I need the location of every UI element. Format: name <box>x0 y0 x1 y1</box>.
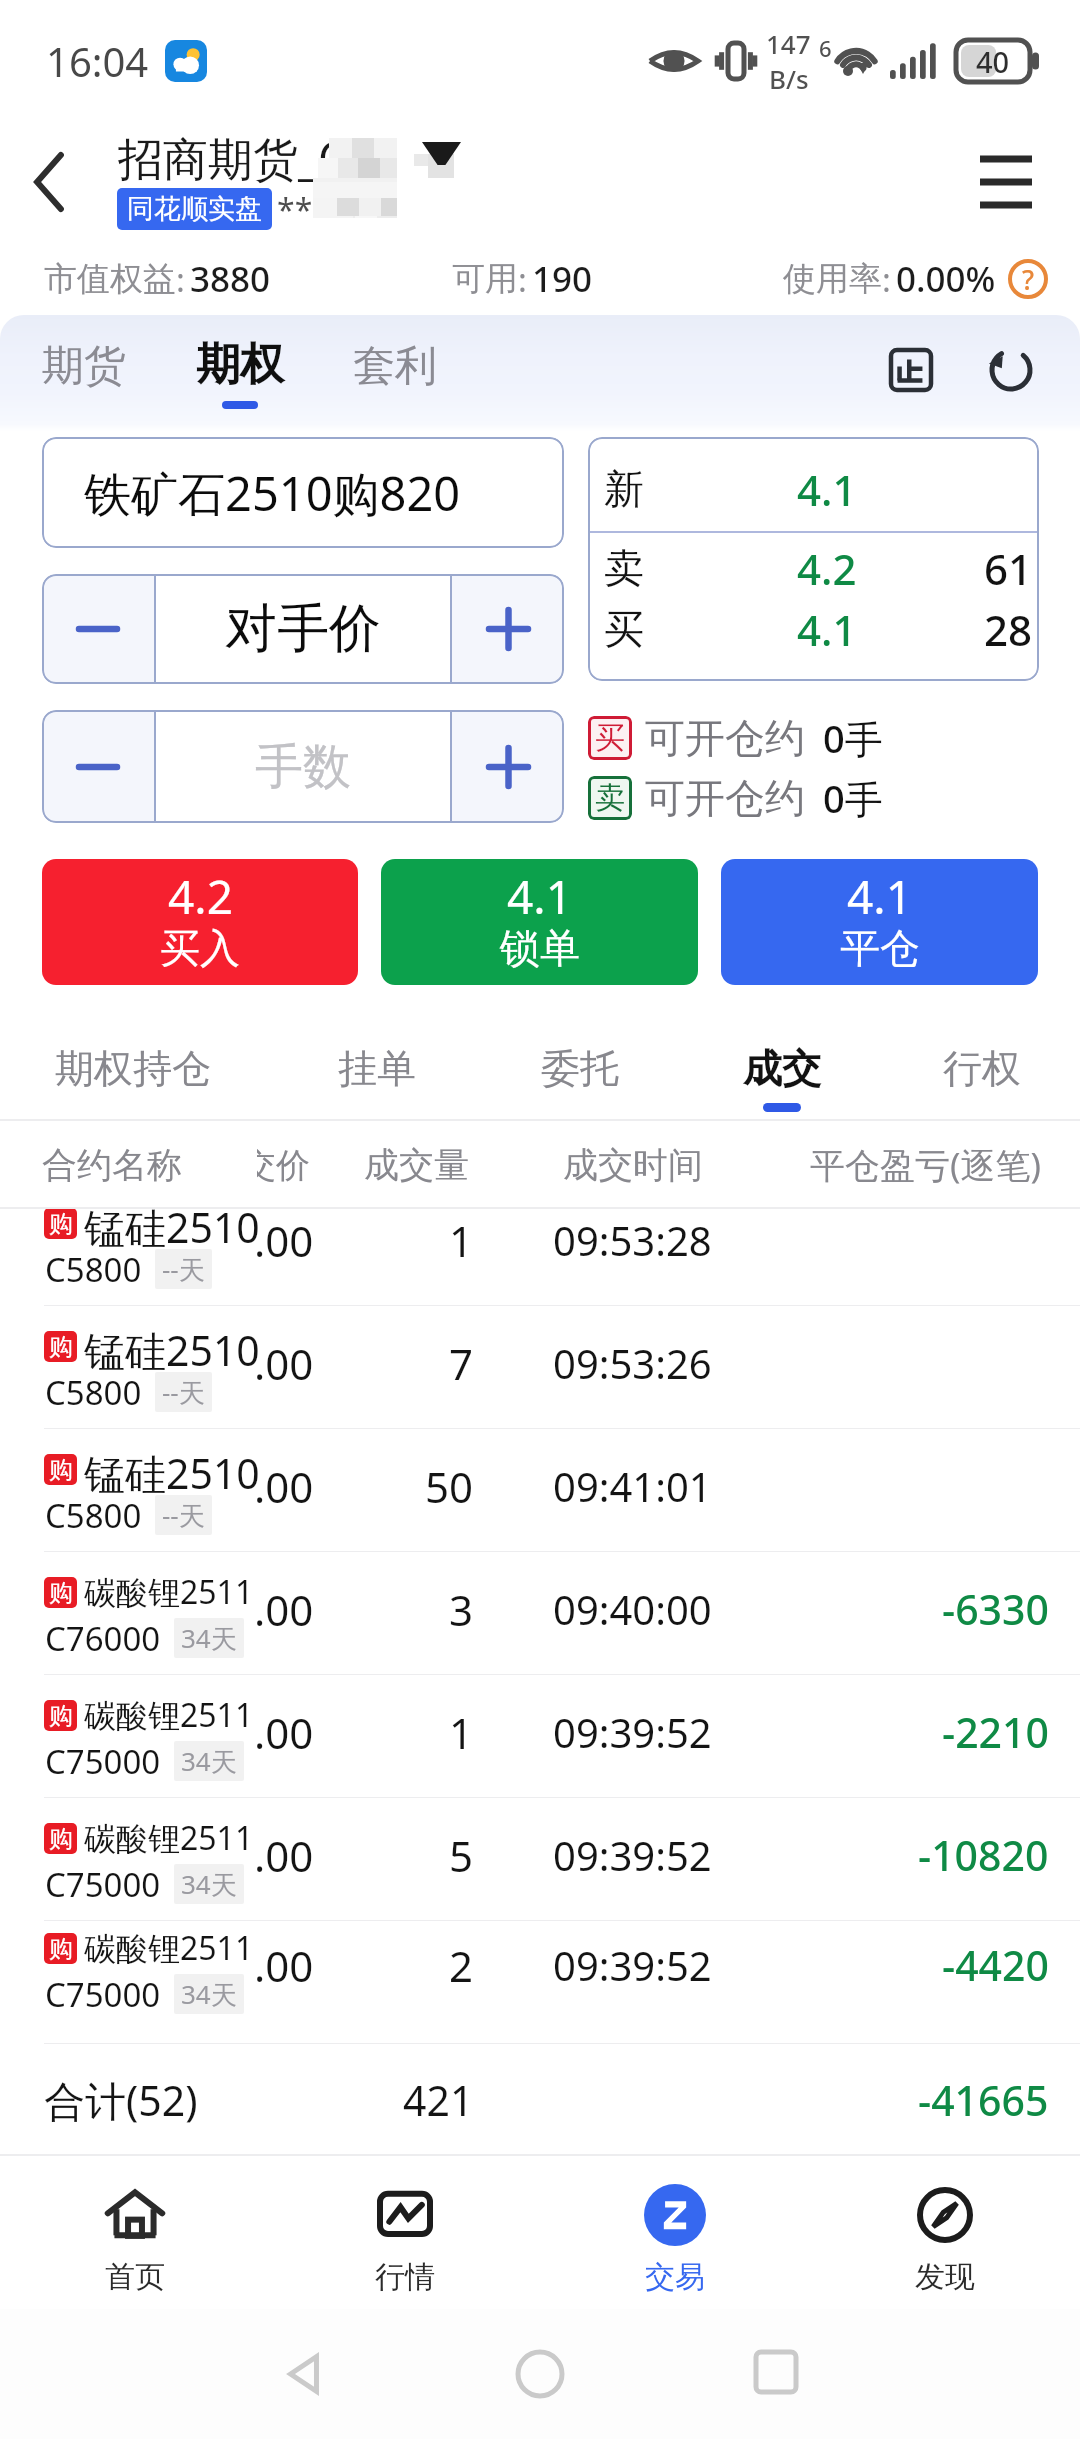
button[interactable]: .00 <box>0 1306 1080 1428</box>
staticText: 09:53:26 <box>553 1336 712 1390</box>
button[interactable]: 铁矿石2510购820 <box>42 437 564 548</box>
staticText: .00 <box>254 1581 314 1638</box>
staticText: .00 <box>254 1937 314 1994</box>
button[interactable]: Refresh <box>978 337 1044 403</box>
staticText: 2 <box>449 1937 474 1994</box>
button[interactable]: .00 <box>0 1552 1080 1674</box>
staticText: 交易 <box>645 2258 705 2296</box>
staticText: 购 <box>49 1455 73 1485</box>
staticText: 可开仓约 <box>645 713 805 763</box>
staticText: 0手 <box>823 712 883 764</box>
button[interactable]: 期权 <box>196 337 284 409</box>
button[interactable]: Help <box>1008 259 1048 299</box>
button[interactable]: 行情 <box>270 2156 540 2309</box>
button[interactable]: 行权 <box>892 1019 1072 1121</box>
staticText: : <box>518 257 527 302</box>
staticText: 5 <box>449 1827 474 1884</box>
staticText: 50 <box>425 1458 474 1515</box>
button[interactable]: .00 <box>0 1675 1080 1797</box>
button[interactable]: 成交 <box>692 1019 872 1121</box>
staticText: 0.00% <box>896 255 996 303</box>
button[interactable]: 4.2 <box>42 859 358 985</box>
staticText: 1 <box>449 1704 474 1761</box>
button[interactable]: 4.1 <box>721 859 1038 985</box>
staticText: 市值权益 <box>44 258 176 300</box>
staticText: 锰硅2510 <box>84 1445 260 1493</box>
staticText: 碳酸锂2511 <box>84 1926 254 1970</box>
staticText: 使用率 <box>783 258 882 300</box>
button[interactable]: 4.1 <box>381 859 698 985</box>
staticText: 行情 <box>375 2258 435 2296</box>
staticText: ? <box>1022 261 1035 298</box>
button[interactable]: 期权持仓 <box>43 1019 223 1121</box>
staticText: 合约名称 <box>42 1143 182 1187</box>
staticText: 成交价 <box>208 1144 310 1187</box>
button[interactable]: 手数 <box>156 710 450 823</box>
staticText: 买 <box>595 719 625 757</box>
staticText: 碳酸锂2511 <box>84 1816 254 1860</box>
button[interactable]: .00 <box>0 1798 1080 1920</box>
button[interactable]: 对手价 <box>156 574 450 684</box>
button[interactable]: .00 <box>0 1429 1080 1551</box>
staticText: 09:53:28 <box>553 1213 712 1267</box>
staticText: 34天 <box>181 1976 237 2012</box>
button[interactable]: .00 <box>0 1921 1080 2017</box>
staticText: -4420 <box>942 1937 1049 1993</box>
staticText: : <box>882 257 891 302</box>
button[interactable]: .00 <box>0 1209 1080 1305</box>
staticText: 09:41:01 <box>553 1459 712 1513</box>
staticText: --天 <box>162 1374 205 1410</box>
staticText: 190 <box>532 255 593 303</box>
staticText: 4.1 <box>797 601 857 658</box>
staticText: 招商期货_C <box>118 127 347 188</box>
staticText: 购 <box>49 1209 73 1239</box>
staticText: --天 <box>162 1251 205 1287</box>
staticText: 发现 <box>915 2258 975 2296</box>
staticText: 平仓盈亏(逐笔) <box>810 1141 1042 1189</box>
button[interactable]: Decrease <box>42 574 154 684</box>
staticText: 61 <box>984 540 1033 597</box>
button[interactable]: 买 <box>588 599 1039 659</box>
staticText: 卖 <box>604 543 644 593</box>
button[interactable]: 委托 <box>490 1019 670 1121</box>
staticText: 碳酸锂2511 <box>84 1570 254 1614</box>
staticText: 期权持仓 <box>55 1044 211 1093</box>
button[interactable]: 挂单 <box>287 1019 467 1121</box>
staticText: C5800 <box>45 1247 142 1291</box>
staticText: 平仓 <box>840 923 920 973</box>
staticText: 4.2 <box>797 540 857 597</box>
staticText: 对手价 <box>225 596 381 662</box>
staticText: .00 <box>254 1458 314 1515</box>
staticText: 同花顺实盘 <box>127 192 262 226</box>
button[interactable]: 套利 <box>353 340 437 393</box>
button[interactable]: Increase <box>452 574 564 684</box>
button[interactable]: 卖 <box>588 538 1039 598</box>
button[interactable]: 发现 <box>810 2156 1080 2309</box>
button[interactable]: 期货 <box>42 340 126 393</box>
staticText: -10820 <box>918 1827 1049 1883</box>
button[interactable]: Back <box>0 132 100 232</box>
staticText: 委托 <box>541 1044 619 1093</box>
button[interactable]: 首页 <box>0 2156 270 2309</box>
staticText: 购 <box>49 1578 73 1608</box>
staticText: -41665 <box>918 2072 1049 2128</box>
button[interactable]: 交易 <box>540 2156 810 2309</box>
staticText: 4.1 <box>797 461 857 518</box>
button[interactable]: Menu <box>958 134 1054 230</box>
button[interactable]: Stop loss <box>878 337 944 403</box>
button[interactable]: Decrease <box>42 710 154 823</box>
staticText: 09:39:52 <box>553 1828 712 1882</box>
staticText: 购 <box>49 1332 73 1362</box>
staticText: 期货 <box>42 340 126 393</box>
staticText: 成交量 <box>364 1143 469 1187</box>
staticText: 3 <box>449 1581 474 1638</box>
staticText: 28 <box>984 601 1033 658</box>
staticText: 421 <box>403 2072 474 2128</box>
staticText: C75000 <box>45 1739 161 1783</box>
staticText: 手数 <box>255 737 351 797</box>
staticText: C75000 <box>45 1972 161 2016</box>
button[interactable]: Increase <box>452 710 564 823</box>
staticText: .00 <box>254 1827 314 1884</box>
staticText: 6 <box>819 33 832 63</box>
button[interactable]: 新 <box>588 459 1039 519</box>
